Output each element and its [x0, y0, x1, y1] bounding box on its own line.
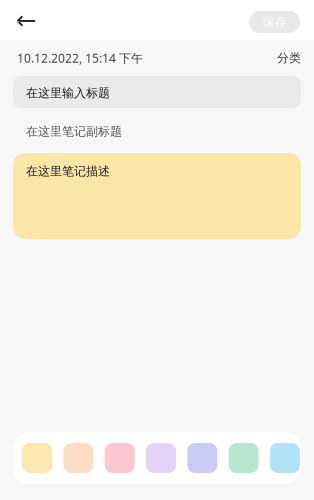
button[interactable]: Colour 7 — [270, 443, 300, 473]
staticText: 在这里输入标题 — [26, 86, 110, 100]
button[interactable]: Colour 6 — [229, 443, 259, 473]
button[interactable]: Back — [6, 0, 46, 41]
staticText: 保存 — [262, 15, 286, 29]
button[interactable]: 分类 — [277, 51, 301, 65]
staticText: 10.12.2022, 15:14 下午 — [17, 50, 143, 66]
button[interactable]: Colour 3 — [105, 443, 135, 473]
button[interactable]: Colour 2 — [63, 443, 93, 473]
button[interactable]: Colour 4 — [146, 443, 176, 473]
staticText: 分类 — [277, 51, 301, 65]
staticText: 在这里笔记副标题 — [26, 124, 122, 139]
button[interactable]: Colour 1 — [22, 443, 52, 473]
staticText: 在这里笔记描述 — [26, 164, 110, 179]
button[interactable]: 保存 — [249, 9, 300, 31]
button[interactable]: Colour 5 — [187, 443, 217, 473]
